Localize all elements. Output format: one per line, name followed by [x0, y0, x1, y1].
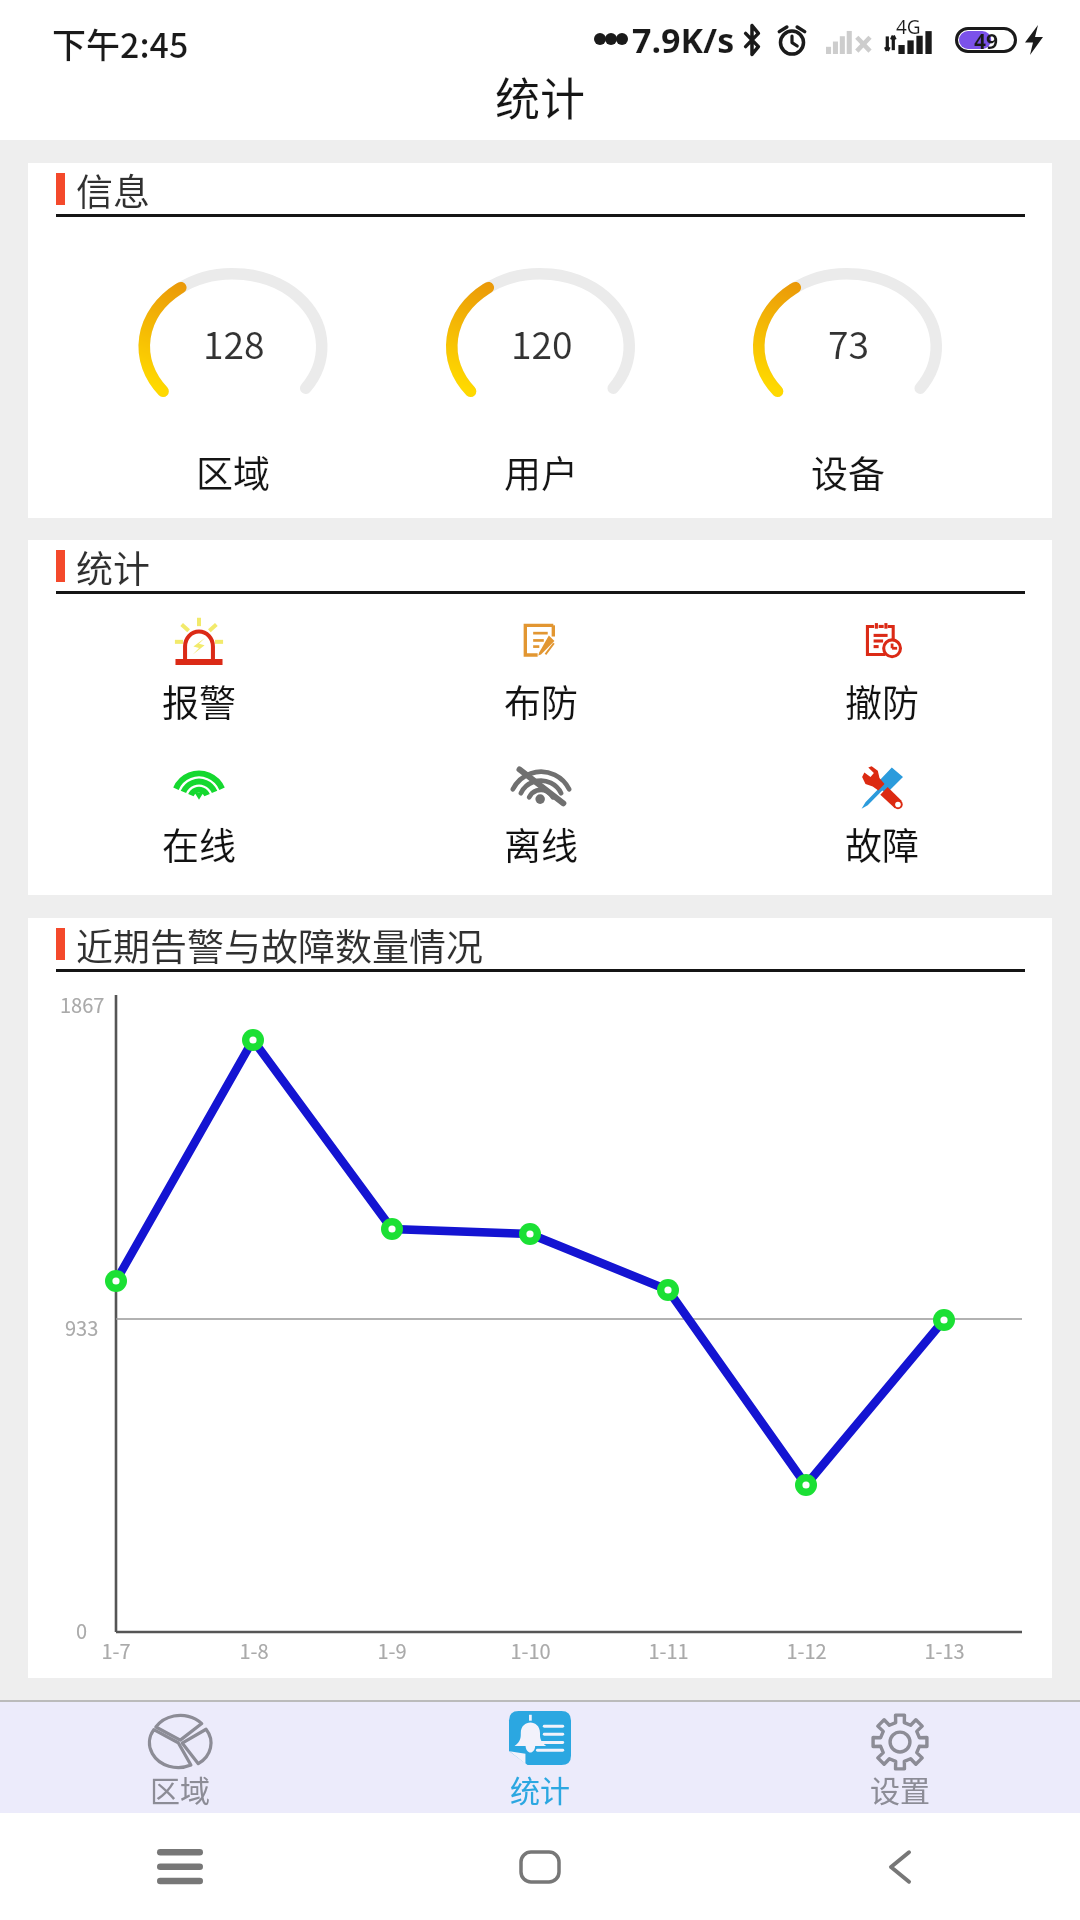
staticText: 下午2:45 — [52, 19, 189, 68]
button[interactable]: 布防 — [370, 613, 711, 728]
staticText: 1-11 — [648, 1636, 689, 1665]
button[interactable]: 离线 — [370, 756, 711, 871]
staticText: 7.9K/s — [632, 17, 735, 63]
staticText: 128 — [203, 316, 265, 370]
staticText: 1-8 — [239, 1636, 269, 1665]
other: Home — [519, 1846, 561, 1888]
staticText: 用户 — [504, 445, 578, 499]
staticText: 信息 — [76, 163, 150, 217]
staticText: 4G — [896, 14, 921, 40]
staticText: 933 — [65, 1313, 99, 1342]
staticText: 1-10 — [510, 1636, 551, 1665]
button[interactable]: 统计 — [360, 1702, 720, 1813]
staticText: 设置 — [870, 1767, 930, 1810]
button[interactable]: 在线 — [28, 756, 370, 871]
other: Recent apps — [157, 1849, 203, 1885]
staticText: 0 — [76, 1616, 88, 1645]
staticText: 在线 — [162, 817, 236, 871]
staticText: 73 — [828, 316, 870, 370]
staticText: 撤防 — [845, 674, 919, 728]
staticText: 统计 — [510, 1767, 570, 1810]
staticText: 布防 — [504, 674, 578, 728]
staticText: 1867 — [60, 990, 105, 1019]
button[interactable]: 故障 — [711, 756, 1052, 871]
staticText: 1-9 — [377, 1636, 407, 1665]
staticText: 49 — [974, 27, 999, 53]
staticText: 1-7 — [101, 1636, 131, 1665]
staticText: 故障 — [845, 817, 919, 871]
staticText: 近期告警与故障数量情况 — [76, 918, 483, 972]
staticText: 统计 — [76, 540, 150, 594]
button[interactable]: 73 — [694, 257, 1001, 499]
button[interactable]: 120 — [387, 257, 694, 499]
staticText: 1-12 — [786, 1636, 827, 1665]
staticText: 统计 — [495, 64, 586, 129]
staticText: 设备 — [811, 445, 885, 499]
button[interactable]: 报警 — [28, 613, 370, 728]
other: Back — [882, 1846, 918, 1888]
button[interactable]: 撤防 — [711, 613, 1052, 728]
staticText: 120 — [511, 316, 573, 370]
staticText: 区域 — [196, 445, 270, 499]
staticText: 1-13 — [924, 1636, 965, 1665]
staticText: 离线 — [504, 817, 578, 871]
button[interactable]: 设置 — [720, 1702, 1080, 1813]
staticText: 区域 — [150, 1767, 210, 1810]
button[interactable]: 区域 — [0, 1702, 360, 1813]
button[interactable]: 128 — [79, 257, 387, 499]
staticText: 报警 — [162, 674, 236, 728]
